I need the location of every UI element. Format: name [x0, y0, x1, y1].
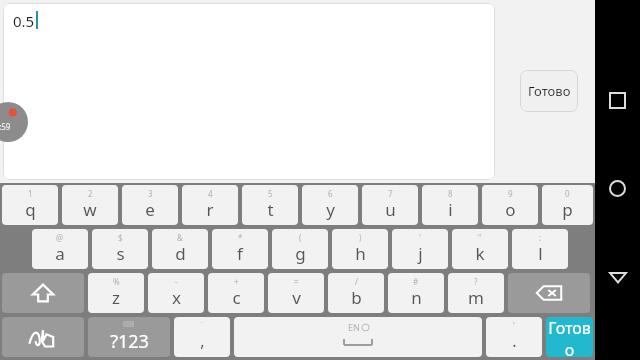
staticText: ,	[200, 330, 205, 352]
button[interactable]: Готово	[546, 317, 593, 357]
button[interactable]: +	[208, 273, 264, 313]
staticText: '	[513, 320, 515, 331]
staticText: 00:59	[0, 121, 11, 132]
staticText: )	[359, 232, 362, 243]
staticText: 2	[88, 188, 93, 199]
staticText: g	[295, 242, 306, 265]
button[interactable]: @	[32, 229, 88, 269]
staticText: y	[326, 198, 335, 221]
staticText: x	[172, 286, 181, 309]
staticText: "	[478, 232, 482, 243]
button[interactable]: 0	[542, 185, 593, 225]
staticText: ?123	[110, 329, 149, 354]
staticText: +	[234, 276, 239, 287]
button[interactable]: 7	[362, 185, 418, 225]
staticText: ?	[474, 276, 478, 287]
staticText: #	[413, 276, 419, 287]
staticText: l	[538, 242, 543, 265]
button[interactable]: ˙	[174, 317, 230, 357]
staticText: d	[175, 242, 186, 265]
button[interactable]: Готово	[520, 70, 578, 112]
staticText: k	[475, 242, 485, 265]
staticText: c	[232, 286, 241, 309]
staticText: =	[294, 276, 299, 287]
staticText: u	[385, 198, 396, 221]
staticText: Готово	[546, 317, 593, 357]
button[interactable]: 4	[182, 185, 238, 225]
staticText: j	[418, 242, 423, 265]
button[interactable]: "	[452, 229, 508, 269]
staticText: 6	[328, 188, 333, 199]
staticText: q	[25, 198, 36, 221]
staticText: @	[56, 232, 64, 243]
staticText: ⌨	[123, 320, 135, 329]
staticText: %	[113, 276, 120, 287]
staticText: *	[238, 232, 243, 243]
staticText: .	[512, 330, 517, 352]
button[interactable]: Recent apps	[595, 78, 640, 123]
button[interactable]: %	[88, 273, 144, 313]
staticText: t	[267, 198, 274, 221]
button[interactable]: 8	[422, 185, 478, 225]
button[interactable]: Back	[595, 254, 640, 299]
staticText: :	[539, 232, 542, 243]
button[interactable]: /	[328, 273, 384, 313]
staticText: v	[292, 286, 301, 309]
staticText: b	[351, 286, 362, 309]
staticText: &	[177, 232, 183, 243]
staticText: /	[355, 276, 358, 287]
staticText: w	[83, 198, 97, 221]
staticText: EN	[348, 321, 360, 333]
button[interactable]: 6	[302, 185, 358, 225]
staticText: 4	[208, 188, 213, 199]
staticText: ˙	[201, 320, 203, 331]
button[interactable]: -	[148, 273, 204, 313]
button[interactable]: 5	[242, 185, 298, 225]
staticText: h	[355, 242, 366, 265]
staticText: 0	[565, 188, 570, 199]
button[interactable]: (	[272, 229, 328, 269]
button[interactable]: )	[332, 229, 388, 269]
staticText: o	[505, 198, 516, 221]
staticText: p	[562, 198, 573, 221]
button[interactable]: 3	[122, 185, 178, 225]
button[interactable]: 2	[62, 185, 118, 225]
staticText: $	[118, 232, 123, 243]
button[interactable]: Home	[595, 166, 640, 211]
button[interactable]: 9	[482, 185, 538, 225]
button[interactable]: :	[512, 229, 568, 269]
staticText: (	[299, 232, 302, 243]
button[interactable]: '	[486, 317, 542, 357]
button[interactable]: Space	[234, 317, 482, 357]
button[interactable]: 0.5	[3, 3, 495, 180]
staticText: f	[237, 242, 243, 265]
staticText: 0.5	[13, 11, 35, 31]
staticText: e	[145, 198, 155, 221]
staticText: n	[411, 286, 422, 309]
staticText: s	[116, 242, 125, 265]
staticText: 9	[508, 188, 513, 199]
button[interactable]: 1	[2, 185, 58, 225]
button[interactable]: #	[388, 273, 444, 313]
button[interactable]: ⌨	[88, 317, 170, 357]
button[interactable]: '	[392, 229, 448, 269]
staticText: a	[55, 242, 65, 265]
button[interactable]: Backspace	[508, 273, 590, 313]
staticText: 5	[268, 188, 273, 199]
button[interactable]: =	[268, 273, 324, 313]
staticText: -	[175, 276, 178, 287]
staticText: 3	[148, 188, 153, 199]
button[interactable]: *	[212, 229, 268, 269]
button[interactable]: ?	[448, 273, 504, 313]
button[interactable]: Recording	[0, 102, 28, 142]
button[interactable]: Shift	[2, 273, 84, 313]
staticText: r	[206, 198, 214, 221]
button[interactable]: &	[152, 229, 208, 269]
staticText: 7	[388, 188, 393, 199]
staticText: 1	[28, 188, 33, 199]
staticText: 8	[448, 188, 453, 199]
staticText: Готово	[528, 82, 571, 100]
button[interactable]: $	[92, 229, 148, 269]
button[interactable]: Handwriting	[2, 317, 84, 357]
staticText: i	[448, 198, 453, 221]
